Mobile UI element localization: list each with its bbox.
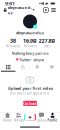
staticText: Twitter: aleyna: [19, 57, 44, 62]
button[interactable]: 38: [4, 37, 21, 48]
staticText: Inbox: [37, 119, 45, 122]
button[interactable]: [15, 65, 30, 72]
button[interactable]: [1, 65, 15, 72]
staticText: Likes: [44, 44, 50, 48]
button[interactable]: 227.8B: [38, 37, 55, 48]
staticText: Nothing fancy just me: [11, 51, 48, 56]
staticText: aleynasunduz: [16, 30, 44, 35]
button[interactable]: [44, 65, 59, 72]
button[interactable]: Inbox: [36, 112, 47, 122]
staticText: Profile: [47, 119, 57, 122]
button[interactable]: Menu: [49, 7, 60, 13]
staticText: Friends: [13, 119, 23, 122]
staticText: Upload: [23, 101, 37, 106]
staticText: Following: [6, 44, 20, 48]
button[interactable]: [30, 65, 44, 72]
staticText: 38: [10, 37, 16, 44]
button[interactable]: Upload: [23, 101, 37, 106]
staticText: 9:41: [5, 0, 15, 7]
button[interactable]: Profile: [47, 112, 58, 122]
button[interactable]: Create: [24, 113, 36, 121]
staticText: 16.9B: [23, 37, 37, 44]
button[interactable]: 16.9B: [21, 37, 38, 48]
staticText: Followers: [23, 44, 36, 48]
button[interactable]: Friends: [13, 112, 24, 122]
button[interactable]: aleynasunduz: [0, 5, 35, 15]
button[interactable]: Home: [2, 112, 13, 122]
staticText: Upload your first video: [7, 86, 52, 91]
staticText: Home: [3, 119, 12, 122]
button[interactable]: Create: [43, 7, 49, 13]
staticText: aleynasunduz: [8, 5, 32, 15]
staticText: 227.8B: [38, 37, 55, 44]
staticText: Your videos will appear here: [10, 92, 50, 95]
